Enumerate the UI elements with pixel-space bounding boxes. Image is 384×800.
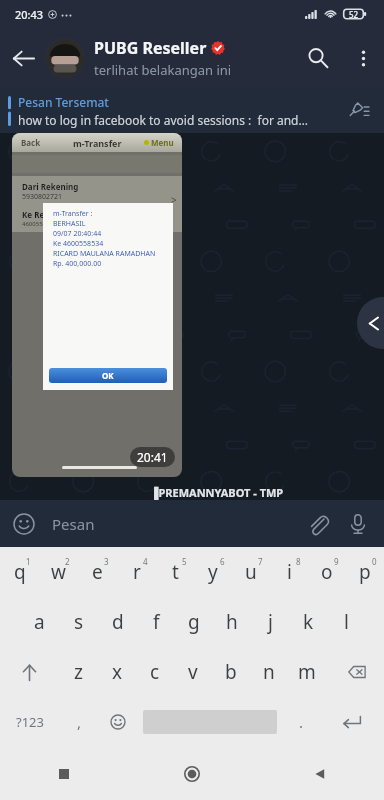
button[interactable]: h [213, 597, 251, 647]
button[interactable]: ?123 [0, 697, 60, 747]
button[interactable]: n [250, 647, 288, 697]
staticText: p [359, 559, 371, 585]
staticText: RICARD MAULANA RAMADHAN [53, 249, 156, 259]
button[interactable]: Backspace [326, 647, 384, 697]
button[interactable]: Search [294, 34, 342, 82]
staticText: b [225, 659, 237, 685]
staticText: f [153, 609, 160, 635]
staticText: y [208, 559, 218, 585]
button[interactable]: f [137, 597, 175, 647]
staticText: 2 [65, 556, 70, 567]
button[interactable]: p [346, 547, 384, 597]
button[interactable]: Emoji [98, 697, 138, 747]
staticText: z [74, 659, 83, 685]
staticText: v [188, 659, 198, 685]
button[interactable]: c [136, 647, 174, 697]
staticText: x [112, 659, 123, 685]
button[interactable]: j [251, 597, 289, 647]
button[interactable]: r [117, 547, 156, 597]
staticText: m-Transfer [73, 137, 122, 149]
staticText: PUBG Reseller [94, 37, 207, 59]
staticText: 20:43 [15, 7, 44, 22]
staticText: Pesan [52, 514, 95, 534]
staticText: m-Transfer : [53, 209, 93, 219]
button[interactable]: w [39, 547, 78, 597]
button[interactable]: Period [282, 697, 320, 747]
staticText: Dari Rekening [22, 181, 79, 192]
button[interactable]: q [0, 547, 39, 597]
button[interactable]: o [308, 547, 346, 597]
staticText: BERHASIL [53, 219, 86, 229]
staticText: a [34, 609, 45, 635]
button[interactable]: Recents [0, 747, 128, 800]
staticText: o [321, 559, 333, 585]
button[interactable]: Pesan Tersemat [0, 88, 384, 133]
button[interactable]: Scroll to bottom [357, 297, 384, 349]
button[interactable]: d [98, 597, 137, 647]
staticText: 4600558534 - RICARD MAULANA RAMADHAN [22, 220, 150, 228]
button[interactable]: x [98, 647, 136, 697]
staticText: r [133, 559, 141, 585]
button[interactable]: v [174, 647, 212, 697]
button[interactable]: More options [342, 37, 384, 79]
staticText: c [150, 659, 160, 685]
staticText: 1 [26, 556, 31, 567]
button[interactable]: t [156, 547, 194, 597]
staticText: , [77, 712, 82, 732]
staticText: 9 [334, 556, 339, 567]
staticText: ▐PREMANNYABOT - TMP [150, 485, 284, 500]
staticText: 52 [349, 9, 359, 20]
staticText: Ke 4600558534 [53, 239, 104, 249]
staticText: 6 [220, 556, 225, 567]
staticText: l [344, 609, 349, 635]
staticText: k [303, 609, 314, 635]
button[interactable]: Profile photo [46, 39, 84, 77]
button[interactable]: Back [256, 747, 384, 800]
staticText: Menu [151, 137, 174, 148]
button[interactable]: m [288, 647, 326, 697]
button[interactable]: z [59, 647, 98, 697]
button[interactable]: Emoji [4, 504, 44, 544]
button[interactable]: Back [0, 35, 46, 81]
staticText: OK [102, 370, 114, 381]
staticText: h [226, 609, 238, 635]
button[interactable]: y [194, 547, 232, 597]
button[interactable]: Comma [60, 697, 98, 747]
button[interactable]: k [289, 597, 327, 647]
staticText: 0 [372, 556, 377, 567]
staticText: terlihat belakangan ini [94, 61, 232, 79]
staticText: j [268, 609, 273, 635]
staticText: n [263, 659, 275, 685]
staticText: 20:41 [137, 449, 168, 465]
button[interactable]: Home [128, 747, 256, 800]
button[interactable]: Attach [298, 504, 338, 544]
staticText: > [171, 193, 177, 207]
button[interactable]: u [232, 547, 270, 597]
button[interactable]: Photo [12, 133, 182, 477]
button[interactable]: Voice message [338, 504, 378, 544]
staticText: d [112, 609, 124, 635]
button[interactable]: l [327, 597, 365, 647]
button[interactable]: Shift [0, 647, 59, 697]
staticText: 09/07 20:40:44 [53, 229, 102, 239]
button[interactable]: i [270, 547, 308, 597]
button[interactable]: e [78, 547, 117, 597]
button[interactable]: a [20, 597, 59, 647]
staticText: Pesan Tersemat [18, 94, 109, 110]
button[interactable]: Pinned messages [342, 94, 376, 128]
staticText: Ke Rekening [22, 209, 72, 220]
button[interactable]: b [212, 647, 250, 697]
button[interactable]: Enter [320, 697, 384, 747]
staticText: s [74, 609, 84, 635]
button[interactable]: OK [49, 368, 167, 383]
button[interactable]: g [175, 597, 213, 647]
staticText: u [245, 559, 257, 585]
staticText: g [188, 609, 200, 635]
staticText: 4 [143, 556, 148, 567]
staticText: ?123 [16, 713, 44, 731]
staticText: t [172, 559, 179, 585]
staticText: . [299, 712, 304, 732]
button[interactable]: s [59, 597, 98, 647]
staticText: m [298, 659, 316, 685]
